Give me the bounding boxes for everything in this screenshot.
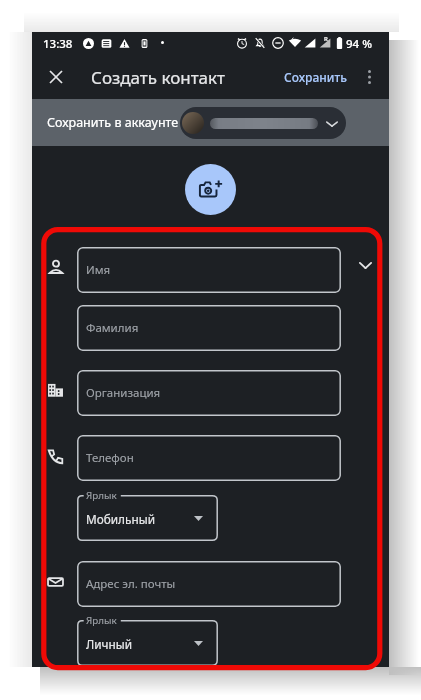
button[interactable]: Личный [77,620,218,666]
button[interactable]: Организация [77,370,341,416]
staticText: Ярлык [86,614,117,627]
staticText: Телефон [86,450,134,466]
button[interactable]: Close [34,55,78,99]
button[interactable]: Телефон [77,435,341,481]
staticText: Создать контакт [91,66,225,89]
staticText: 13:38 [43,36,73,52]
button[interactable]: Сохранить [276,64,355,90]
staticText: Организация [86,385,161,401]
button[interactable]: Мобильный [77,495,218,541]
staticText: Личный [86,636,133,652]
staticText: R [324,35,328,43]
button[interactable]: More options [347,55,391,99]
staticText: Ярлык [86,489,117,502]
staticText: Фамилия [86,320,139,336]
staticText: Имя [86,262,111,278]
staticText: Сохранить [284,69,347,85]
staticText: 94 % [346,36,372,52]
button[interactable]: Expand name fields [350,250,381,281]
button[interactable]: Add photo [185,164,236,215]
button[interactable]: Фамилия [77,305,341,351]
staticText: Сохранить в аккаунте [47,114,179,131]
button[interactable]: Имя [77,247,341,293]
button[interactable]: Адрес эл. почты [77,561,341,607]
button[interactable]: Account selector [180,107,346,139]
staticText: Адрес эл. почты [86,576,176,592]
staticText: Мобильный [86,511,155,527]
